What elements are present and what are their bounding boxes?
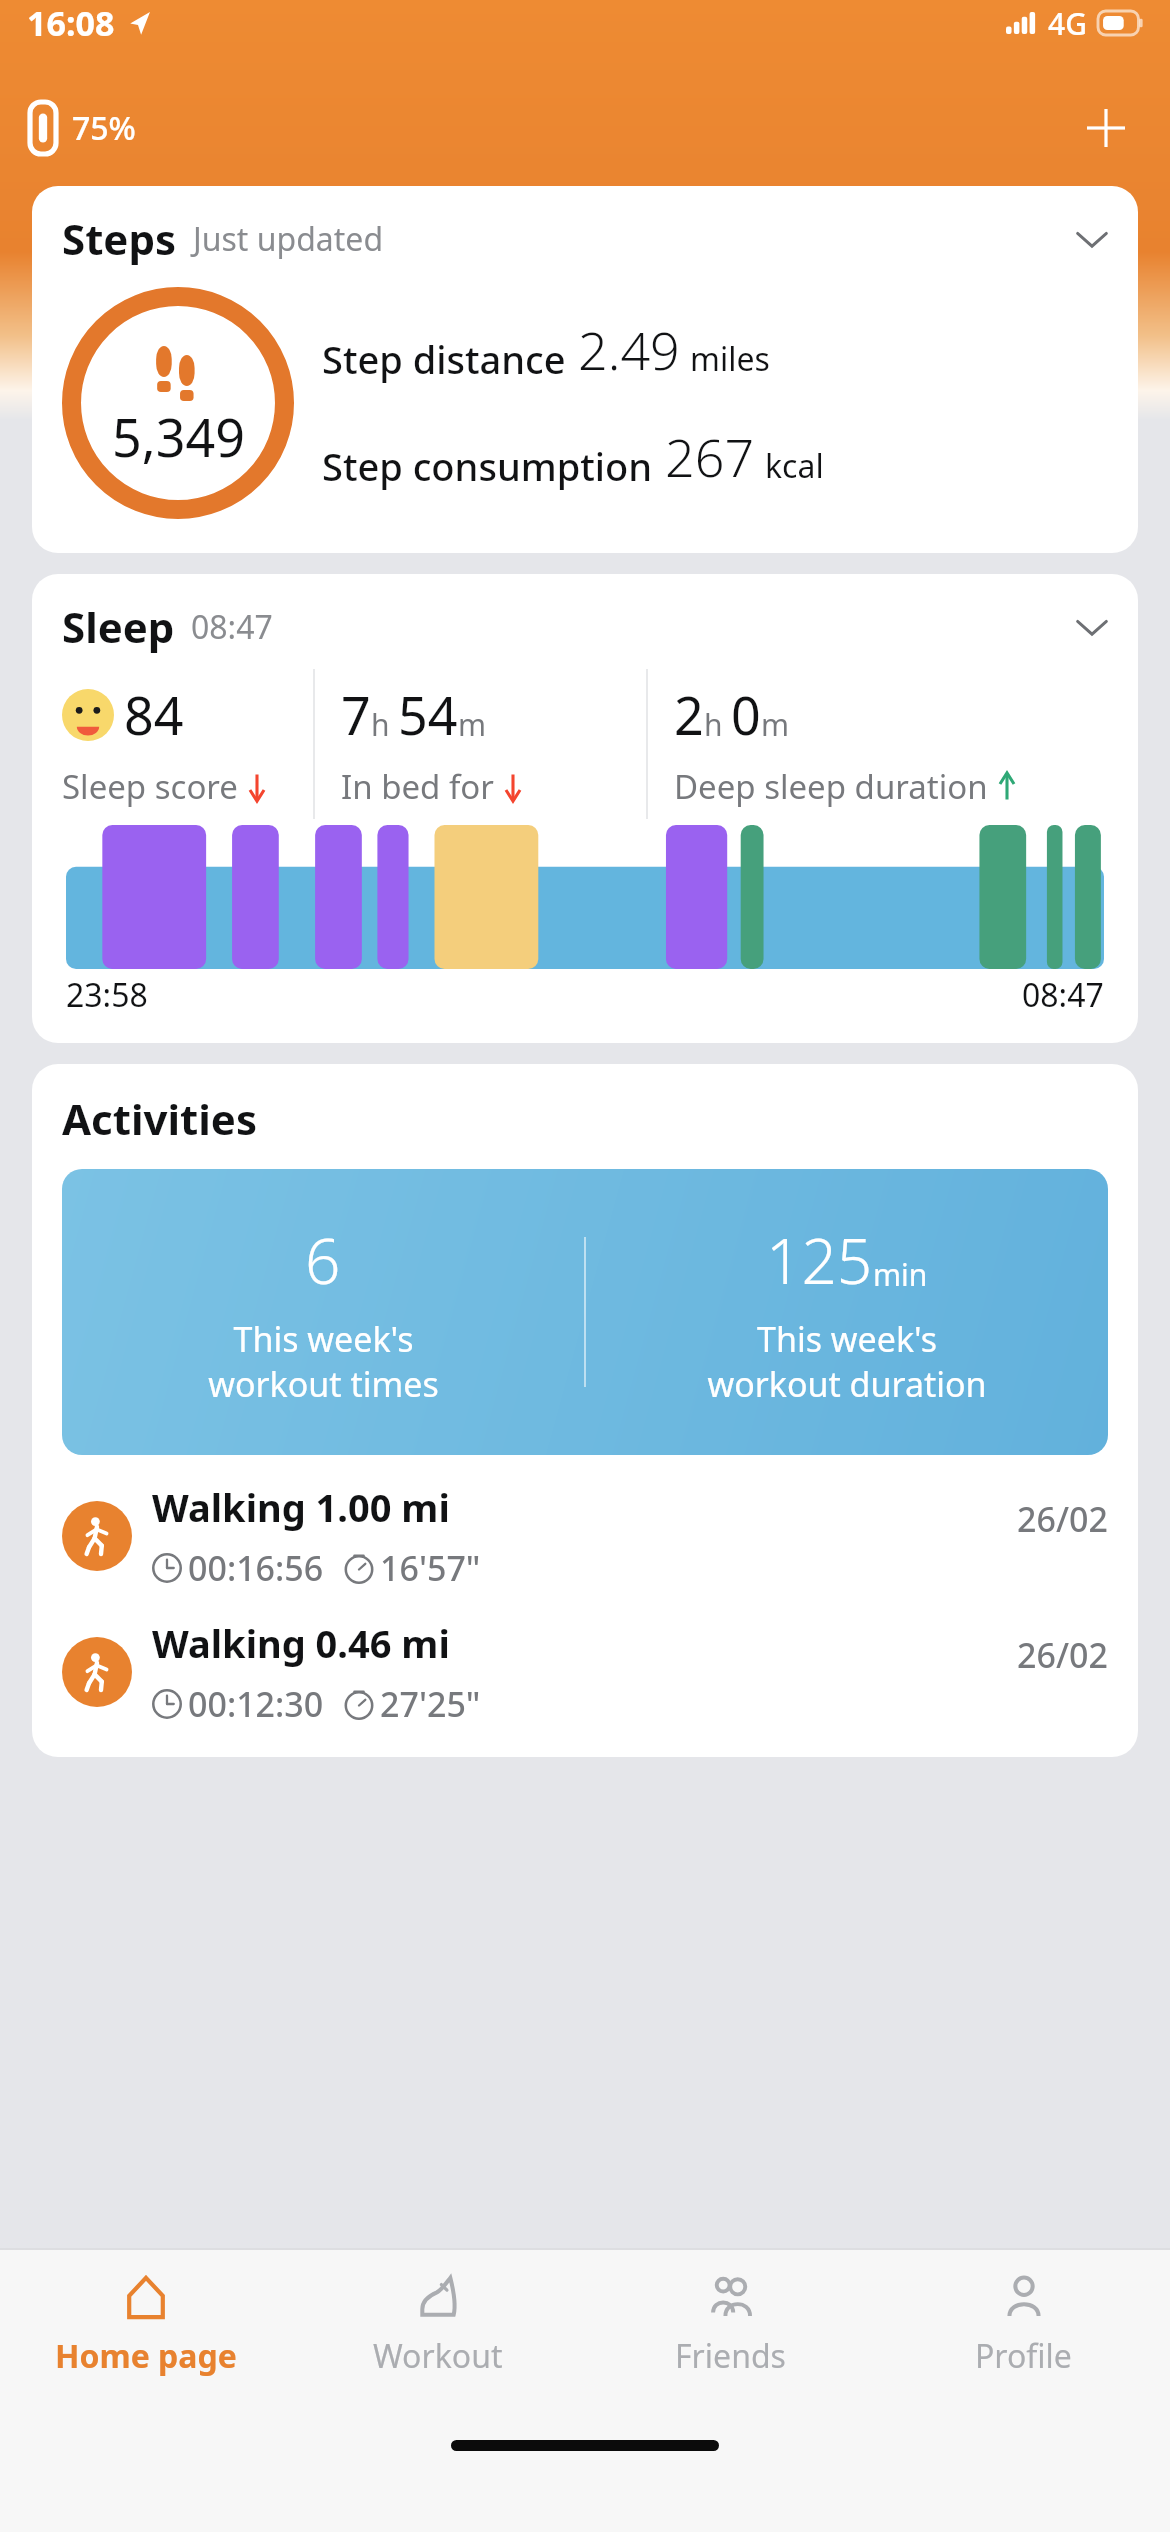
staticText: 5,349 [112,401,245,472]
button[interactable]: 2 [648,669,1138,819]
button[interactable]: Walking 1.00 mi [32,1455,1138,1591]
staticText: 08:47 [1022,973,1104,1017]
staticText: Walking 0.46 mi [152,1617,450,1669]
staticText: h [704,704,723,745]
staticText: 84 [124,679,184,750]
staticText: 267 [665,421,755,492]
staticText: Just updated [193,217,384,261]
staticText: 16'57" [380,1545,481,1591]
staticText: m [458,704,487,745]
staticText: Step distance [322,333,566,385]
staticText: miles [690,337,770,381]
staticText: 0 [731,679,761,750]
staticText: 23:58 [66,973,148,1017]
staticText: 27'25" [380,1681,481,1727]
staticText: 125 [766,1218,873,1302]
staticText: 08:47 [191,605,273,649]
staticText: Deep sleep duration [674,764,988,809]
staticText: 4G [1048,3,1087,44]
staticText: Step consumption [322,440,653,492]
staticText: 2 [674,679,704,750]
staticText: Sleep [62,598,175,655]
button[interactable]: Steps [32,186,1138,273]
staticText: This week's workout times [208,1316,439,1406]
staticText: 00:12:30 [188,1681,324,1727]
staticText: Activities [62,1090,258,1147]
staticText: 7 [341,679,371,750]
button[interactable]: Profile [877,2250,1170,2398]
button[interactable]: Friends [584,2250,877,2398]
staticText: Steps [62,210,177,267]
staticText: 54 [398,679,458,750]
staticText: 26/02 [1017,1632,1108,1678]
staticText: Home page [55,2334,237,2378]
staticText: 6 [305,1218,341,1302]
staticText: min [873,1254,928,1295]
staticText: Sleep score [62,764,238,809]
button[interactable]: Workout [292,2250,584,2398]
staticText: kcal [765,444,824,488]
staticText: m [761,704,790,745]
staticText: Walking 1.00 mi [152,1481,450,1533]
staticText: 2.49 [578,314,680,385]
staticText: This week's workout duration [707,1316,987,1406]
button[interactable]: 6 [62,1169,1108,1455]
staticText: h [371,704,390,745]
staticText: Friends [675,2334,786,2378]
staticText: 75% [72,106,136,150]
button[interactable]: Walking 0.46 mi [32,1591,1138,1727]
button[interactable]: Add [1072,94,1140,162]
staticText: In bed for [341,764,494,809]
button[interactable]: 84 [32,669,313,819]
button[interactable]: Home page [0,2250,292,2398]
staticText: 16:08 [27,0,115,46]
button[interactable]: Activities [32,1064,1138,1151]
staticText: Profile [975,2334,1072,2378]
button[interactable] [66,825,1104,969]
staticText: Workout [373,2334,503,2378]
staticText: 26/02 [1017,1496,1108,1542]
button[interactable]: 7 [315,669,646,819]
button[interactable]: Sleep [32,574,1138,661]
staticText: 00:16:56 [188,1545,324,1591]
